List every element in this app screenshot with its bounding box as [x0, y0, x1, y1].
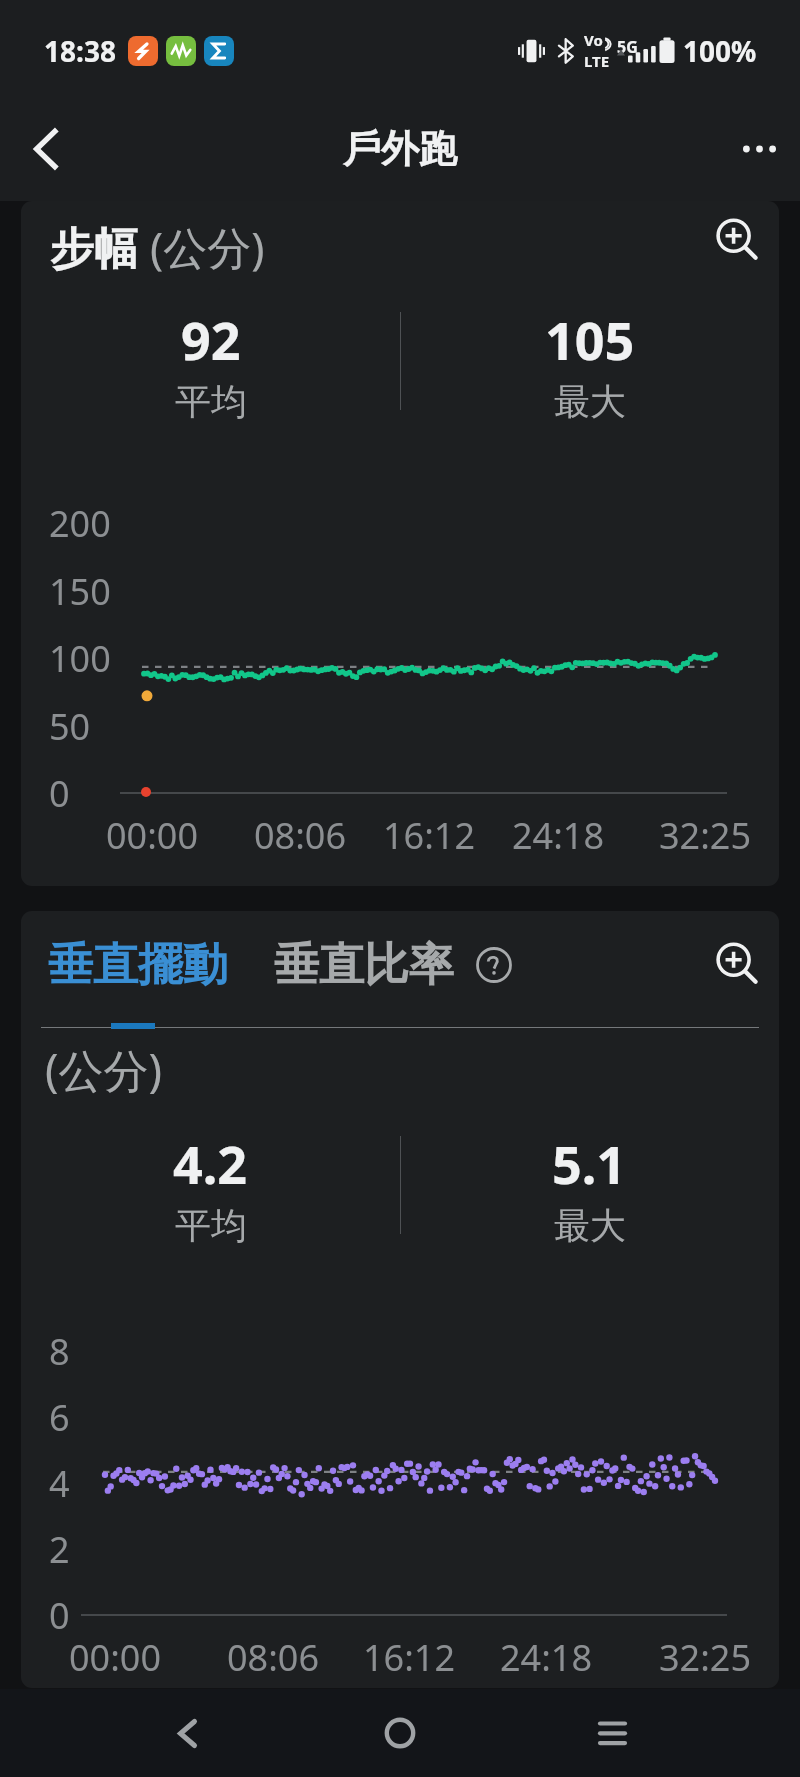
- staticText: 105: [545, 304, 635, 375]
- staticText: 32:25: [659, 1633, 752, 1682]
- button[interactable]: Help: [472, 943, 516, 987]
- staticText: 戶外跑: [343, 125, 457, 173]
- button[interactable]: Zoom in: [709, 212, 767, 270]
- staticText: 垂直擺動: [48, 937, 228, 994]
- staticText: 18:38: [44, 32, 116, 70]
- staticText: (公分): [150, 217, 265, 277]
- staticText: 最大: [554, 379, 626, 424]
- staticText: 50: [49, 702, 91, 751]
- staticText: 200: [49, 499, 111, 548]
- staticText: Vo: [584, 30, 603, 50]
- staticText: 平均: [175, 1203, 247, 1248]
- staticText: 100%: [683, 32, 757, 70]
- staticText: 92: [181, 304, 241, 375]
- staticText: LTE: [584, 51, 610, 71]
- button[interactable]: More options: [723, 113, 795, 185]
- staticText: (公分): [45, 1039, 163, 1100]
- staticText: 100: [49, 634, 111, 683]
- button[interactable]: 垂直擺動: [48, 937, 228, 994]
- button[interactable]: Back: [9, 113, 81, 185]
- staticText: 08:06: [227, 1633, 320, 1682]
- staticText: 2: [49, 1525, 70, 1574]
- staticText: 00:00: [106, 811, 199, 860]
- button[interactable]: Home: [360, 1693, 440, 1773]
- staticText: 0: [49, 769, 70, 818]
- button[interactable]: Recent apps: [572, 1693, 652, 1773]
- staticText: 4.2: [173, 1128, 248, 1199]
- staticText: 5.1: [552, 1128, 627, 1199]
- staticText: 16:12: [383, 811, 476, 860]
- staticText: 最大: [554, 1203, 626, 1248]
- staticText: 16:12: [363, 1633, 456, 1682]
- staticText: 步幅: [50, 217, 150, 277]
- staticText: 4: [49, 1459, 70, 1508]
- staticText: 0: [49, 1591, 70, 1640]
- staticText: 5G: [617, 36, 638, 58]
- staticText: 00:00: [69, 1633, 162, 1682]
- button[interactable]: 垂直比率: [274, 937, 454, 994]
- button[interactable]: Zoom in: [709, 936, 767, 994]
- staticText: 32:25: [659, 811, 752, 860]
- staticText: 垂直比率: [274, 937, 454, 994]
- button[interactable]: 步幅: [21, 201, 779, 886]
- button[interactable]: Back: [147, 1693, 227, 1773]
- staticText: 08:06: [254, 811, 347, 860]
- staticText: 8: [49, 1327, 70, 1376]
- staticText: 150: [49, 567, 111, 616]
- staticText: 6: [49, 1393, 70, 1442]
- staticText: 平均: [175, 379, 247, 424]
- staticText: 24:18: [500, 1633, 593, 1682]
- staticText: 24:18: [512, 811, 605, 860]
